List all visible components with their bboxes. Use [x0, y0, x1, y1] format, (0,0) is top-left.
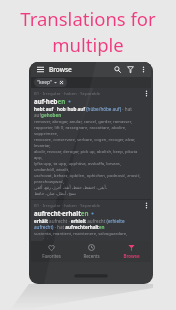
staticText: B1 · Irregular · haben · Separable [34, 202, 101, 208]
staticText: نسخ، أبطل، صان، حافظ [34, 191, 76, 197]
staticText: Browse [123, 253, 140, 259]
button[interactable]: B1 · Irregular · haben · Separable [31, 88, 151, 199]
staticText: Recents [83, 253, 100, 259]
button[interactable]: Entry options [142, 202, 150, 211]
staticText: B1 · Irregular · haben · Separable [34, 90, 101, 96]
button[interactable]: Filter [124, 63, 137, 76]
staticText: przechowywać, [34, 179, 64, 185]
staticText: أبقى، احتفظ، حفظ، أنقذ، أحرز، رفع، ألغى، [34, 185, 107, 191]
staticText: Translations for [20, 6, 156, 31]
staticText: "keep" [37, 79, 52, 86]
button[interactable]: B1 · Irregular · haben · Separable [31, 200, 151, 241]
staticText: remover, abrogar, anular, cancel, garder… [34, 119, 132, 125]
button[interactable]: More options [137, 63, 150, 76]
staticText: rapporter, lift (), rassegnare, raccatta… [34, 125, 142, 137]
staticText: hebt auf · hob/hub auf (hübe/höbe auf) ·… [34, 106, 142, 118]
button[interactable]: "keep" [34, 78, 67, 87]
staticText: erhält aufrecht · erhielt aufrecht (erhi… [34, 218, 142, 230]
staticText: sustenta, mantient, maintenere, salvagua… [34, 231, 142, 239]
button[interactable]: Remove filter [59, 80, 64, 85]
button[interactable]: Search [111, 63, 124, 76]
staticText: Favorites [42, 253, 61, 259]
button[interactable]: Entry options [142, 90, 150, 99]
staticText: aufrecht·erhalten [34, 209, 89, 217]
staticText: multiple languages [6, 32, 170, 82]
staticText: uschovat, beharz, opbilen, ophichen, pod… [34, 173, 141, 179]
button[interactable]: Open navigation drawer [35, 64, 46, 75]
staticText: auf·heben [34, 97, 66, 105]
button[interactable]: Recents [71, 241, 111, 262]
staticText: lyfta upp, ta upp, upphäva, avskaffa, be… [34, 161, 142, 173]
button[interactable]: Browse [111, 241, 151, 262]
staticText: revocare, conservare, serbare, cogen, re… [34, 137, 142, 149]
button[interactable]: Favorites [31, 241, 71, 262]
staticText: abolir, revocar, derogar, pick up, aboli… [34, 149, 142, 161]
staticText: Browse [49, 65, 72, 74]
